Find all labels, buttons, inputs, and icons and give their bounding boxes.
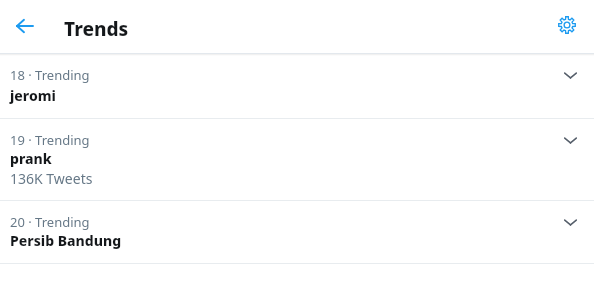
button[interactable]: 18 · Trending bbox=[0, 56, 594, 118]
button[interactable]: Settings bbox=[551, 9, 583, 41]
staticText: 20 · Trending bbox=[10, 213, 90, 231]
button[interactable]: 20 · Trending bbox=[0, 201, 594, 263]
staticText: 19 · Trending bbox=[10, 131, 90, 149]
staticText: 136K Tweets bbox=[10, 169, 93, 188]
staticText: Persib Bandung bbox=[10, 231, 122, 250]
staticText: 18 · Trending bbox=[10, 66, 90, 84]
staticText: prank bbox=[10, 149, 52, 168]
button[interactable]: More options bbox=[554, 124, 586, 156]
staticText: Trends bbox=[64, 16, 129, 42]
button[interactable]: More options bbox=[554, 59, 586, 91]
staticText: jeromi bbox=[10, 86, 56, 105]
button[interactable]: Back bbox=[9, 10, 41, 42]
button[interactable]: More options bbox=[554, 206, 586, 238]
button[interactable]: 19 · Trending bbox=[0, 119, 594, 200]
